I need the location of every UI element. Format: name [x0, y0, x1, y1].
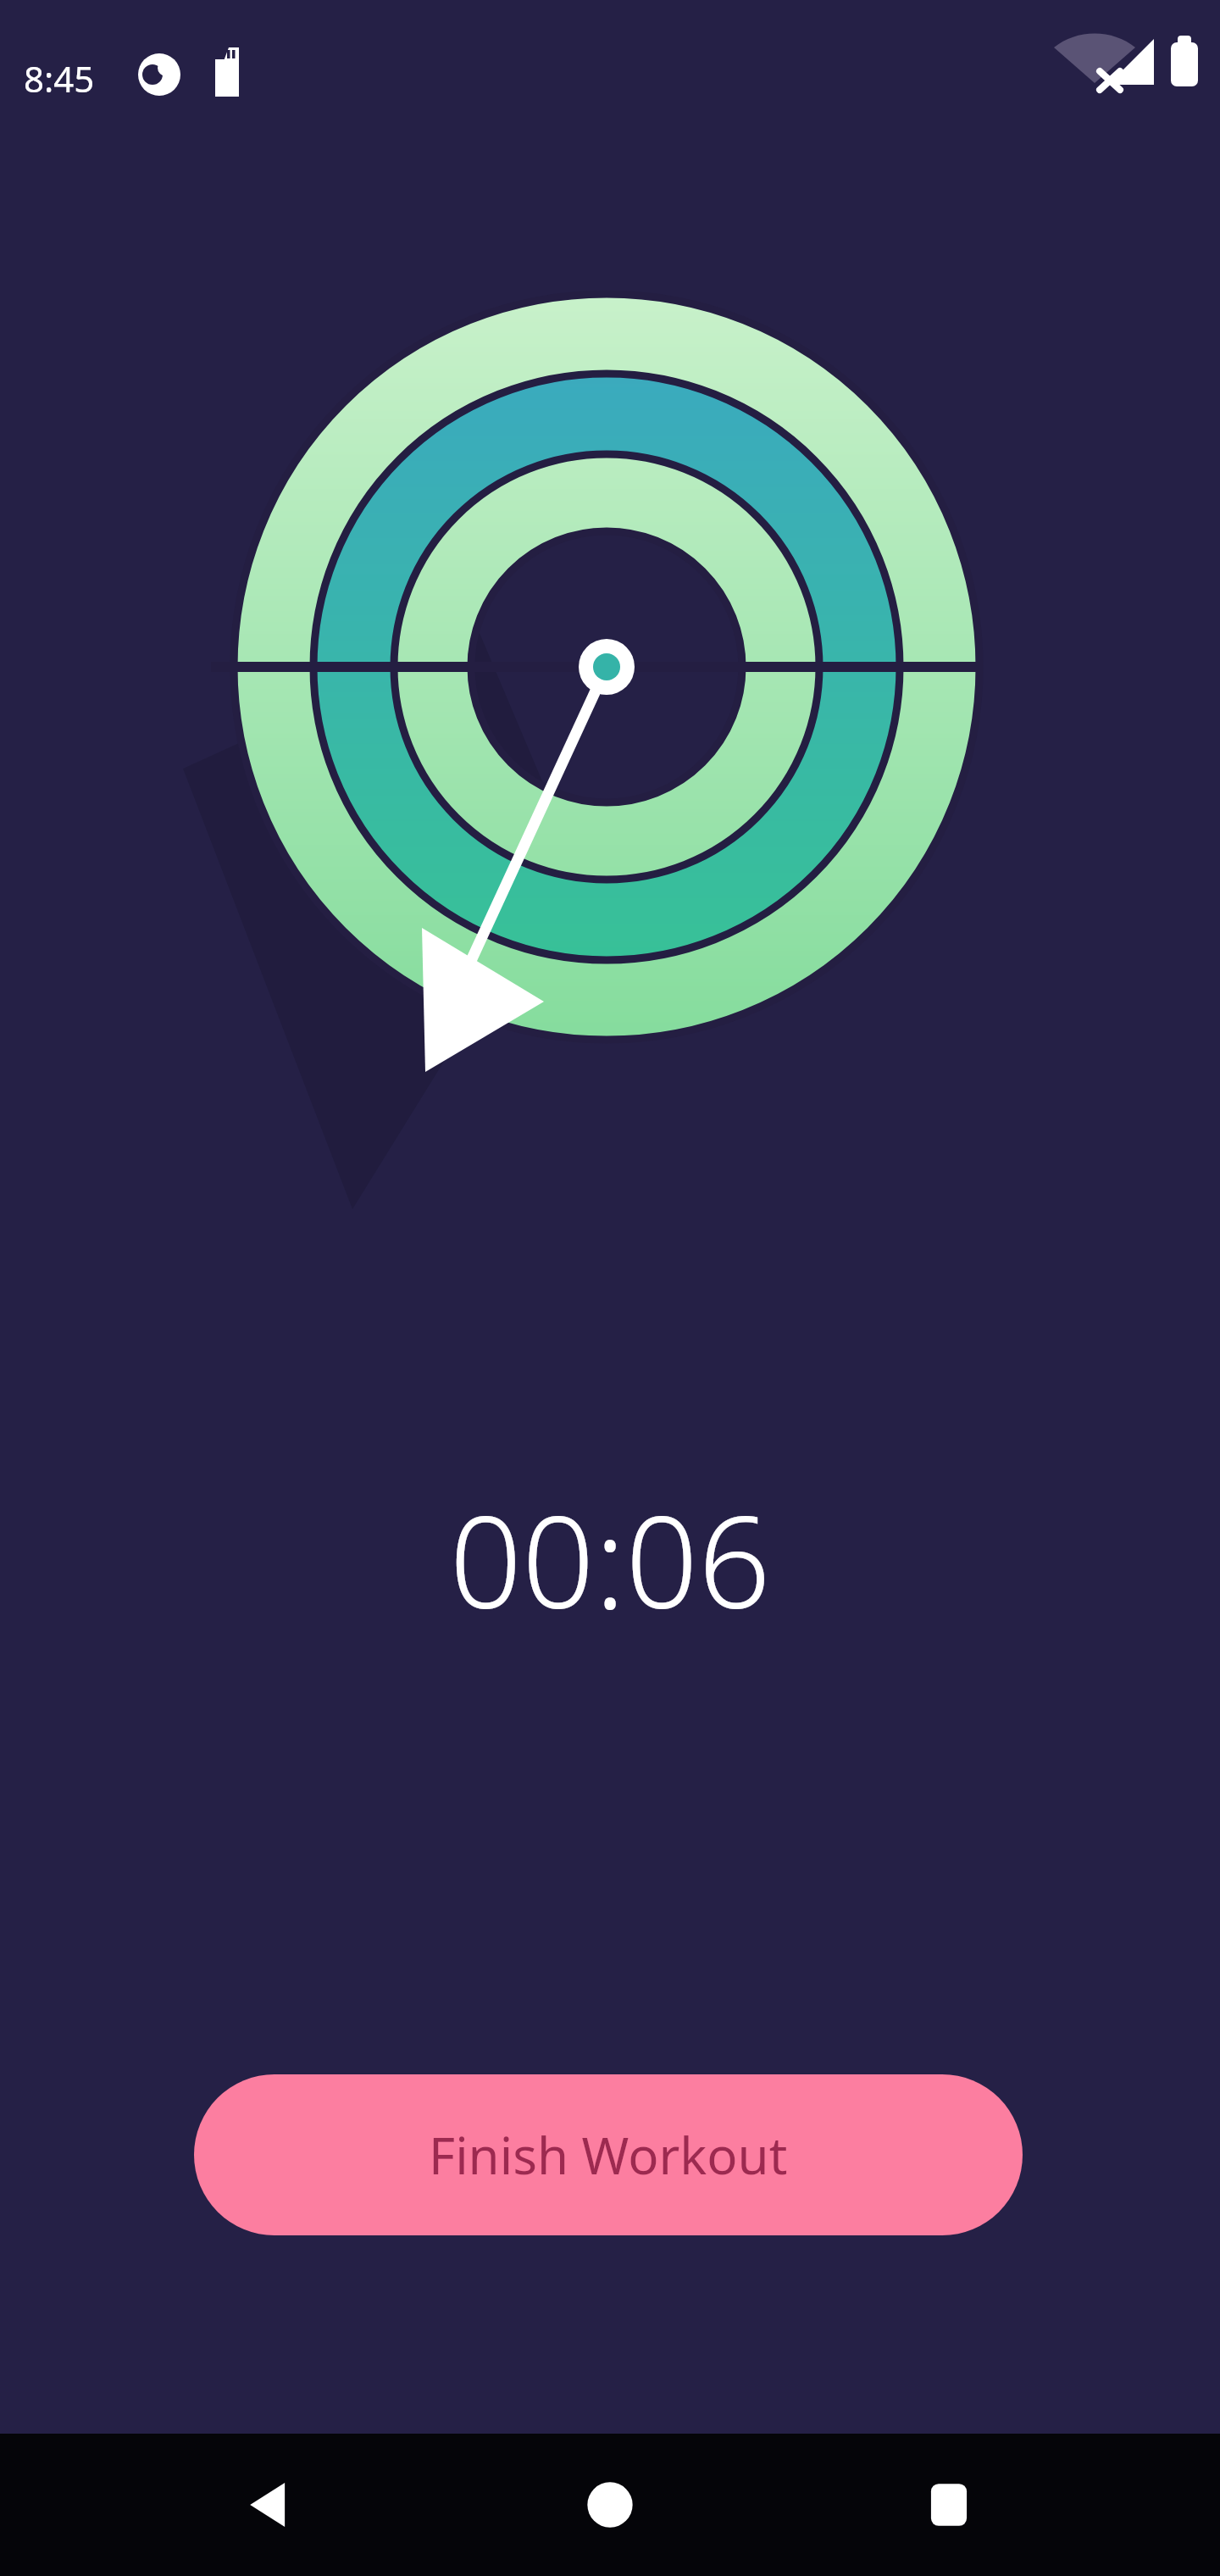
button[interactable]: Back — [203, 2437, 339, 2573]
button[interactable]: Home — [542, 2437, 678, 2573]
button[interactable]: Recent apps — [881, 2437, 1017, 2573]
staticText: 00:06 — [0, 1473, 1220, 1646]
button[interactable]: Finish Workout — [194, 2074, 1023, 2235]
staticText: Finish Workout — [429, 2120, 788, 2190]
staticText: 8:45 — [24, 54, 95, 103]
